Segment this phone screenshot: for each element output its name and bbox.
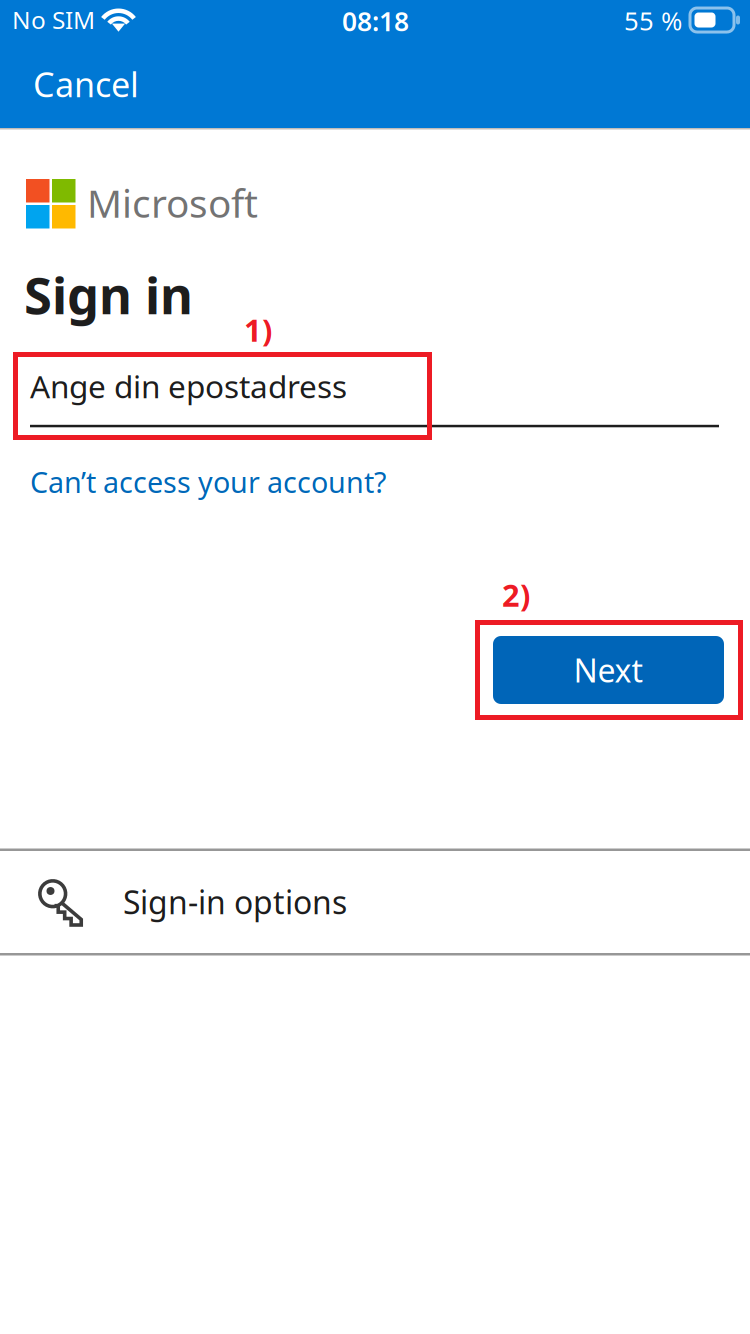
button[interactable]: Cancel	[33, 45, 167, 123]
button[interactable]: Sign-in options	[0, 851, 750, 953]
staticText: No SIM	[12, 3, 95, 36]
staticText: 1)	[244, 309, 272, 351]
button[interactable]: Ange din epostadress	[30, 356, 719, 416]
staticText: Cancel	[33, 61, 139, 107]
staticText: 08:18	[342, 3, 409, 39]
staticText: 55 %	[624, 3, 682, 38]
button[interactable]: Can’t access your account?	[30, 461, 402, 503]
staticText: Sign-in options	[123, 880, 347, 924]
staticText: Ange din epostadress	[30, 364, 347, 407]
staticText: 2)	[502, 574, 530, 616]
staticText: Next	[573, 649, 643, 691]
staticText: Sign in	[24, 261, 193, 328]
staticText: Can’t access your account?	[30, 462, 386, 501]
button[interactable]: Next	[493, 636, 724, 704]
staticText: Microsoft	[87, 177, 258, 228]
